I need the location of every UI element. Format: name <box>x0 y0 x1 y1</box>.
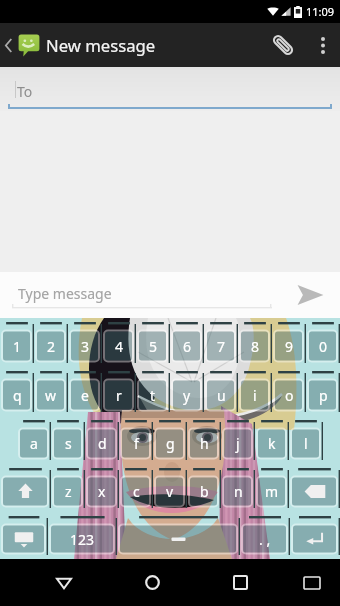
staticText: t <box>150 386 156 405</box>
button[interactable]: m <box>255 464 289 512</box>
staticText: p <box>319 386 328 405</box>
button[interactable]: z <box>51 464 85 512</box>
staticText: h <box>200 434 209 453</box>
staticText: i <box>253 386 257 405</box>
staticText: To <box>17 82 33 101</box>
staticText: q <box>13 386 22 405</box>
button[interactable]: t <box>136 367 170 416</box>
staticText: Type message <box>18 284 112 303</box>
button[interactable]: More options <box>306 23 340 67</box>
button[interactable]: a <box>17 416 51 464</box>
button[interactable]: 1 <box>0 318 34 367</box>
button[interactable]: Type message <box>0 272 280 318</box>
staticText: 1 <box>13 337 22 356</box>
staticText: z <box>65 482 72 501</box>
staticText: j <box>236 434 240 453</box>
staticText: 5 <box>149 337 158 356</box>
staticText: y <box>183 386 191 405</box>
staticText: w <box>45 386 57 405</box>
staticText: b <box>200 482 209 501</box>
staticText: 0 <box>319 337 328 356</box>
button[interactable]: 3 <box>68 318 102 367</box>
staticText: f <box>134 434 139 453</box>
staticText: r <box>116 386 122 405</box>
button[interactable]: y <box>170 367 204 416</box>
button[interactable] <box>0 464 51 512</box>
button[interactable]: h <box>187 416 221 464</box>
staticText: n <box>234 482 243 501</box>
button[interactable]: 4 <box>102 318 136 367</box>
button[interactable]: Attach <box>260 23 306 67</box>
button[interactable]: 5 <box>136 318 170 367</box>
button[interactable]: Up <box>0 23 44 67</box>
button[interactable] <box>289 464 340 512</box>
button[interactable]: x <box>85 464 119 512</box>
button[interactable]: 8 <box>238 318 272 367</box>
staticText: 4 <box>115 337 124 356</box>
staticText: . , <box>259 530 271 549</box>
staticText: 3 <box>81 337 90 356</box>
staticText: 6 <box>183 337 192 356</box>
staticText: m <box>265 482 279 501</box>
button[interactable]: f <box>119 416 153 464</box>
button[interactable]: Send <box>280 272 340 318</box>
staticText: c <box>133 482 140 501</box>
button[interactable] <box>290 512 340 559</box>
staticText: o <box>285 386 294 405</box>
staticText: v <box>166 482 174 501</box>
button[interactable]: l <box>289 416 323 464</box>
button[interactable]: 2 <box>34 318 68 367</box>
button[interactable] <box>0 512 48 559</box>
staticText: e <box>81 386 89 405</box>
button[interactable]: 6 <box>170 318 204 367</box>
staticText: a <box>30 434 38 453</box>
button[interactable]: e <box>68 367 102 416</box>
button[interactable]: . , <box>240 512 290 559</box>
button[interactable]: j <box>221 416 255 464</box>
button[interactable]: g <box>153 416 187 464</box>
button[interactable]: o <box>272 367 306 416</box>
staticText: 7 <box>217 337 226 356</box>
button[interactable]: p <box>306 367 340 416</box>
staticText: x <box>98 482 106 501</box>
button[interactable]: 0 <box>306 318 340 367</box>
button[interactable]: q <box>0 367 34 416</box>
staticText: u <box>217 386 226 405</box>
staticText: New message <box>46 34 156 57</box>
staticText: d <box>98 434 107 453</box>
button[interactable]: Recent apps <box>196 559 284 606</box>
button[interactable]: Back <box>20 559 108 606</box>
button[interactable]: v <box>153 464 187 512</box>
button[interactable]: 123 <box>48 512 117 559</box>
button[interactable]: r <box>102 367 136 416</box>
button[interactable]: k <box>255 416 289 464</box>
staticText: 11:09 <box>306 4 335 19</box>
button[interactable]: c <box>119 464 153 512</box>
button[interactable]: u <box>204 367 238 416</box>
staticText: 2 <box>47 337 56 356</box>
button[interactable] <box>117 512 240 559</box>
button[interactable]: d <box>85 416 119 464</box>
staticText: s <box>65 434 72 453</box>
button[interactable]: w <box>34 367 68 416</box>
staticText: l <box>304 434 308 453</box>
button[interactable]: s <box>51 416 85 464</box>
staticText: 9 <box>285 337 294 356</box>
staticText: k <box>268 434 276 453</box>
staticText: 8 <box>251 337 260 356</box>
button[interactable]: n <box>221 464 255 512</box>
staticText: 123 <box>70 530 95 549</box>
button[interactable]: To <box>0 67 340 111</box>
button[interactable]: Change keyboard <box>284 559 340 606</box>
button[interactable]: i <box>238 367 272 416</box>
staticText: g <box>166 434 175 453</box>
button[interactable]: 7 <box>204 318 238 367</box>
button[interactable]: Home <box>108 559 196 606</box>
button[interactable]: b <box>187 464 221 512</box>
button[interactable]: 9 <box>272 318 306 367</box>
